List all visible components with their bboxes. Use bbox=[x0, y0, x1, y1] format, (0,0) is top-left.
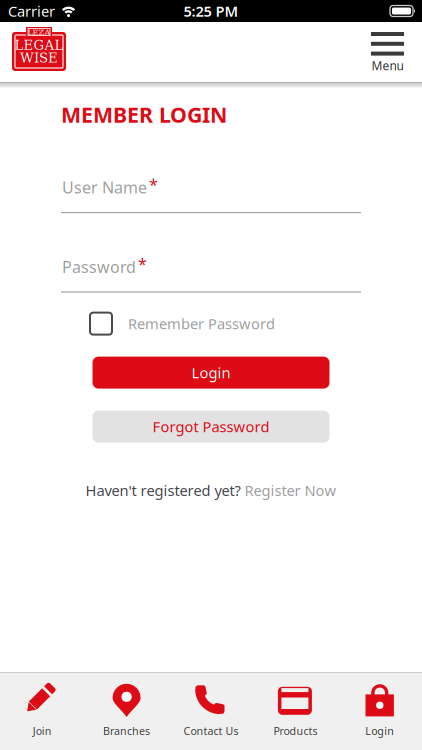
staticText: Products bbox=[273, 724, 317, 738]
staticText: Password bbox=[62, 256, 136, 277]
staticText: User Name bbox=[62, 177, 147, 198]
button[interactable]: Products bbox=[253, 673, 338, 750]
staticText: Login bbox=[191, 363, 230, 382]
button[interactable]: Menu bbox=[371, 22, 422, 73]
staticText: * bbox=[138, 253, 147, 274]
button[interactable]: Login bbox=[338, 673, 422, 750]
staticText: Carrier bbox=[8, 1, 55, 21]
staticText: LEZA bbox=[27, 27, 50, 37]
button[interactable]: Haven't registered yet? bbox=[85, 481, 336, 500]
button[interactable]: Branches bbox=[84, 673, 169, 750]
button[interactable]: Login bbox=[92, 357, 329, 389]
staticText: Haven't registered yet? bbox=[85, 481, 240, 500]
staticText: Join bbox=[33, 724, 52, 738]
button[interactable]: Join bbox=[0, 673, 84, 750]
staticText: 5:25 PM bbox=[183, 1, 238, 21]
staticText: Forgot Password bbox=[152, 417, 269, 436]
button[interactable]: Password bbox=[0, 256, 422, 293]
button[interactable]: User Name bbox=[0, 177, 422, 213]
button[interactable]: Forgot Password bbox=[92, 411, 329, 443]
staticText: LEGAL bbox=[14, 37, 63, 53]
button[interactable]: Remember Password bbox=[0, 313, 422, 335]
staticText: Register Now bbox=[244, 481, 336, 500]
staticText: Branches bbox=[103, 724, 150, 738]
staticText: MEMBER LOGIN bbox=[61, 100, 227, 129]
staticText: Menu bbox=[371, 58, 403, 73]
staticText: Contact Us bbox=[183, 724, 238, 738]
staticText: * bbox=[149, 174, 158, 195]
staticText: WISE bbox=[20, 50, 58, 65]
staticText: Login bbox=[365, 724, 394, 738]
staticText: Remember Password bbox=[128, 314, 275, 333]
button[interactable]: Contact Us bbox=[169, 673, 253, 750]
